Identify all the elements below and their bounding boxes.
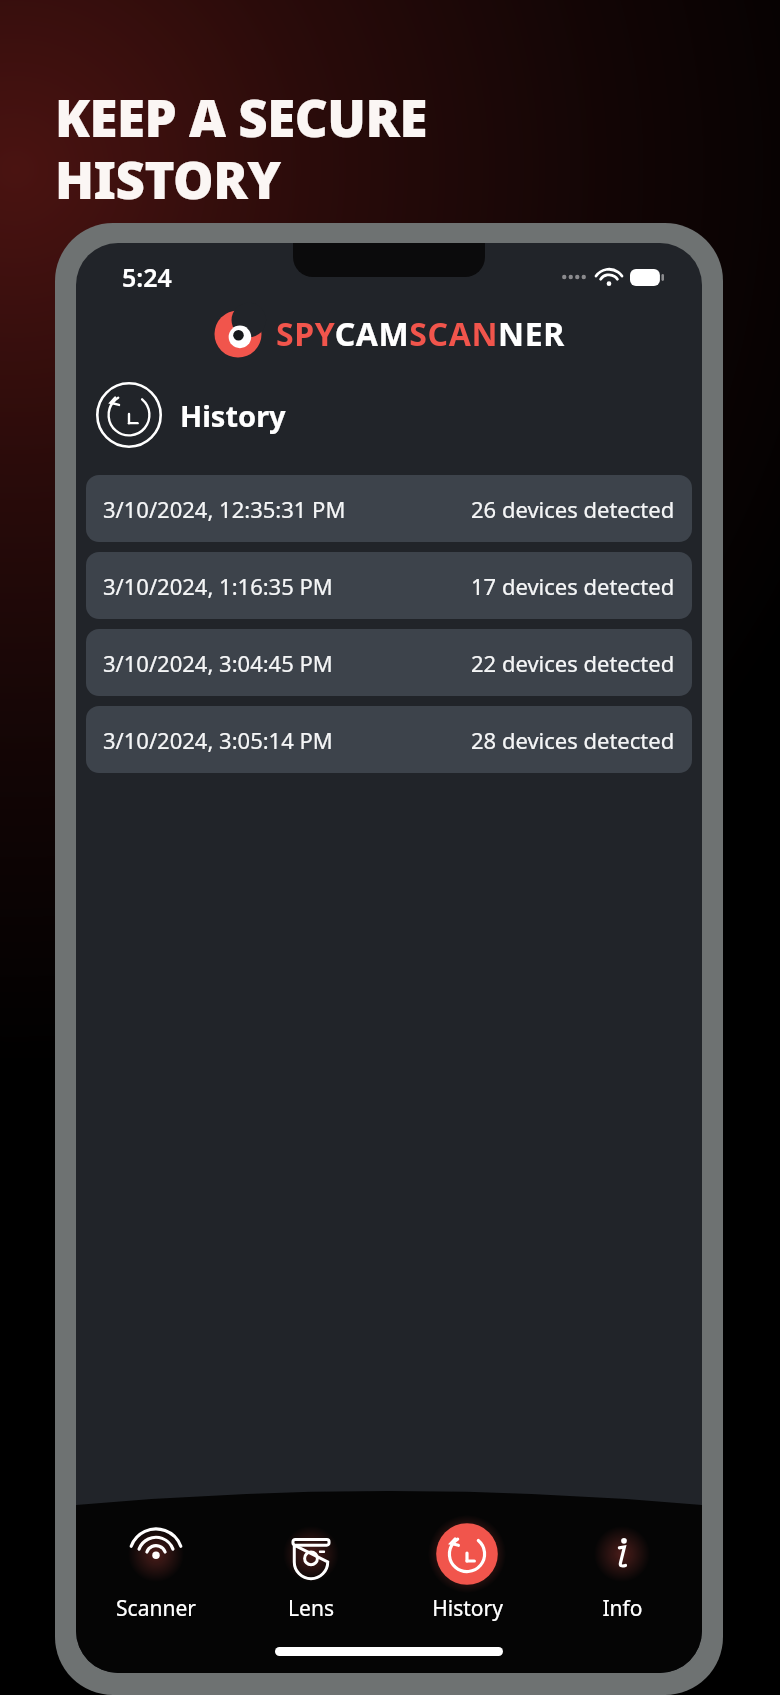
staticText: Lens [288,1594,334,1623]
staticText: KEEP A SECURE HISTORY [55,82,427,214]
staticText: 3/10/2024, 12:35:31 PM [103,494,346,524]
staticText: 3/10/2024, 3:05:14 PM [103,725,333,755]
staticText: 17 devices detected [471,571,675,601]
button[interactable]: 3/10/2024, 3:05:14 PM [86,706,692,773]
staticText: 22 devices detected [471,648,675,678]
staticText: History [432,1594,503,1623]
button[interactable]: Lens [236,1513,386,1625]
staticText: Info [602,1594,643,1623]
button[interactable]: History [95,381,163,449]
staticText: SPYCAMSCANNER [276,312,565,356]
staticText: 3/10/2024, 1:16:35 PM [103,571,333,601]
staticText: 3/10/2024, 3:04:45 PM [103,648,333,678]
staticText: History [180,396,286,435]
staticText: Scanner [116,1594,196,1623]
button[interactable]: Info [547,1513,697,1625]
button[interactable]: Scanner [81,1513,231,1625]
staticText: 5:24 [122,260,172,294]
staticText: 28 devices detected [471,725,675,755]
button[interactable]: 3/10/2024, 3:04:45 PM [86,629,692,696]
button[interactable]: 3/10/2024, 1:16:35 PM [86,552,692,619]
staticText: 26 devices detected [471,494,675,524]
button[interactable]: History [392,1513,542,1625]
button[interactable]: 3/10/2024, 12:35:31 PM [86,475,692,542]
